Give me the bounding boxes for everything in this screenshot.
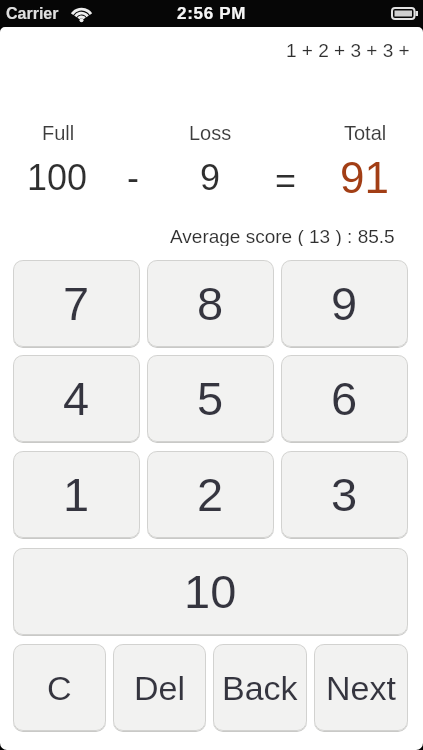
staticText: 1 + 2 + 3 + 3 + [286, 40, 410, 60]
staticText: Del [134, 669, 186, 707]
button[interactable]: Back [213, 644, 307, 731]
staticText: Total [344, 122, 387, 142]
staticText: = [275, 160, 297, 200]
button[interactable]: 4 [13, 355, 140, 442]
button[interactable]: 1 [13, 451, 140, 538]
staticText: 9 [331, 277, 358, 330]
staticText: 9 [200, 157, 221, 197]
button[interactable]: 10 [13, 548, 408, 635]
button[interactable]: 3 [281, 451, 408, 538]
staticText: 7 [63, 277, 90, 330]
staticText: 4 [63, 372, 90, 425]
staticText: 3 [331, 468, 358, 521]
button[interactable]: 5 [147, 355, 274, 442]
staticText: C [47, 669, 72, 707]
staticText: Next [326, 669, 396, 707]
staticText: 100 [27, 157, 88, 197]
staticText: 2 [197, 468, 224, 521]
button[interactable]: Del [113, 644, 206, 731]
staticText: Average score ( 13 ) : 85.5 [170, 226, 395, 246]
staticText: Carrier [6, 5, 59, 23]
staticText: 1 [63, 468, 90, 521]
staticText: 8 [197, 277, 224, 330]
staticText: 5 [197, 372, 224, 425]
button[interactable]: C [13, 644, 106, 731]
button[interactable]: Next [314, 644, 408, 731]
staticText: Loss [189, 122, 232, 142]
button[interactable]: 2 [147, 451, 274, 538]
button[interactable]: 9 [281, 260, 408, 347]
staticText: 6 [331, 372, 358, 425]
staticText: Back [222, 669, 298, 707]
staticText: Full [42, 122, 75, 142]
button[interactable]: 6 [281, 355, 408, 442]
staticText: 91 [340, 153, 389, 202]
button[interactable]: 8 [147, 260, 274, 347]
staticText: 2:56 PM [177, 4, 247, 23]
button[interactable]: 7 [13, 260, 140, 347]
staticText: - [127, 157, 139, 197]
staticText: 10 [184, 565, 237, 618]
